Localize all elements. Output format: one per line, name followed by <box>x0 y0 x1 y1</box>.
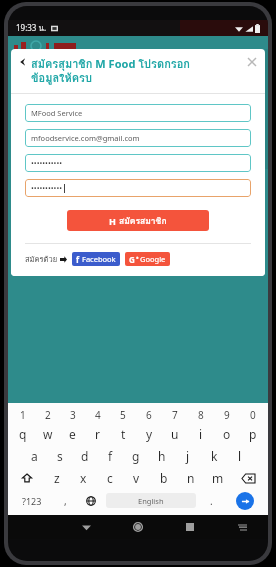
staticText: n <box>187 470 195 486</box>
staticText: . <box>210 494 213 508</box>
staticText: g <box>132 448 140 464</box>
button[interactable]: H <box>67 210 209 231</box>
staticText: d <box>81 448 89 464</box>
button[interactable]: Recent apps <box>164 515 216 539</box>
staticText: b <box>160 470 168 486</box>
button[interactable]: k <box>201 445 227 467</box>
button[interactable]: a <box>22 445 47 467</box>
button[interactable]: MFood Service <box>25 104 251 122</box>
staticText: x <box>80 470 87 486</box>
staticText: l <box>238 448 242 464</box>
staticText: r <box>95 426 100 442</box>
staticText: i <box>199 426 203 442</box>
staticText: G <box>129 254 135 265</box>
button[interactable]: 5 <box>110 406 136 423</box>
button[interactable]: n <box>177 467 204 489</box>
staticText: 0 <box>250 408 256 422</box>
staticText: j <box>186 448 190 464</box>
button[interactable]: f <box>97 445 123 467</box>
button[interactable]: e <box>60 423 85 445</box>
staticText: k <box>211 448 218 464</box>
staticText: H <box>109 215 116 227</box>
button[interactable]: o <box>214 423 240 445</box>
button[interactable]: Keyboard <box>216 515 268 539</box>
staticText: English <box>138 496 164 506</box>
button[interactable]: t <box>110 423 136 445</box>
button[interactable]: G <box>125 252 170 266</box>
button[interactable]: Change language <box>78 489 103 512</box>
staticText: Google <box>140 254 166 264</box>
staticText: f <box>76 254 80 265</box>
button[interactable]: z <box>44 467 70 489</box>
button[interactable]: 1 <box>10 406 35 423</box>
staticText: h <box>158 448 166 464</box>
button[interactable]: v <box>123 467 150 489</box>
staticText: m <box>212 470 224 486</box>
button[interactable]: f <box>72 252 120 266</box>
staticText: Facebook <box>82 254 116 264</box>
button[interactable]: 3 <box>60 406 85 423</box>
button[interactable]: d <box>72 445 97 467</box>
staticText: q <box>19 426 27 442</box>
button[interactable]: p <box>240 423 266 445</box>
button[interactable]: ••••••••••• <box>25 179 251 197</box>
button[interactable]: h <box>149 445 175 467</box>
staticText: ••••••••••• <box>31 158 63 168</box>
staticText: u <box>171 426 179 442</box>
button[interactable]: 9 <box>214 406 240 423</box>
button[interactable]: b <box>150 467 177 489</box>
button[interactable]: g <box>123 445 149 467</box>
staticText: 3 <box>70 408 76 422</box>
button[interactable]: i <box>188 423 214 445</box>
staticText: 7 <box>172 408 178 422</box>
staticText: v <box>133 470 140 486</box>
button[interactable]: m <box>204 467 231 489</box>
button[interactable]: , <box>53 489 78 512</box>
button[interactable]: Send <box>236 492 254 510</box>
button[interactable]: l <box>227 445 253 467</box>
button[interactable]: 2 <box>35 406 60 423</box>
button[interactable]: Home <box>112 515 164 539</box>
button[interactable]: q <box>10 423 35 445</box>
staticText: สมัครสุมาชิก M Food โปรดกรอก ข้อมูลให้คร… <box>31 55 245 87</box>
staticText: MFood Service <box>31 108 83 118</box>
button[interactable]: 6 <box>136 406 162 423</box>
button[interactable]: j <box>175 445 201 467</box>
staticText: 5 <box>120 408 126 422</box>
staticText: 4 <box>95 408 101 422</box>
button[interactable]: Back <box>60 515 112 539</box>
staticText: w <box>43 426 53 442</box>
button[interactable]: ••••••••••• <box>25 154 251 172</box>
staticText: p <box>249 426 257 442</box>
button[interactable]: 4 <box>85 406 110 423</box>
staticText: 8 <box>198 408 204 422</box>
staticText: s <box>57 448 63 464</box>
button[interactable]: 8 <box>188 406 214 423</box>
button[interactable]: ?123 <box>10 489 53 512</box>
staticText: a <box>31 448 38 464</box>
staticText: mfoodservice.com@gmail.com <box>31 133 140 143</box>
button[interactable]: English <box>106 493 196 508</box>
button[interactable]: r <box>85 423 110 445</box>
button[interactable]: 0 <box>240 406 266 423</box>
button[interactable]: Backspace <box>231 467 266 489</box>
button[interactable]: Back <box>16 55 30 69</box>
button[interactable]: x <box>70 467 96 489</box>
button[interactable]: Shift <box>10 467 44 489</box>
staticText: สมัครด้วย <box>25 253 58 265</box>
staticText: f <box>108 448 113 464</box>
button[interactable]: mfoodservice.com@gmail.com <box>25 129 251 147</box>
staticText: , <box>64 494 67 508</box>
button[interactable]: c <box>96 467 123 489</box>
staticText: ?123 <box>22 495 42 507</box>
button[interactable]: u <box>162 423 188 445</box>
button[interactable]: w <box>35 423 60 445</box>
staticText: o <box>223 426 231 442</box>
button[interactable]: 7 <box>162 406 188 423</box>
button[interactable]: Close <box>245 55 259 69</box>
button[interactable]: s <box>47 445 72 467</box>
button[interactable]: . <box>199 489 224 512</box>
staticText: z <box>54 470 60 486</box>
staticText: ••••••••••• <box>31 183 63 193</box>
button[interactable]: y <box>136 423 162 445</box>
